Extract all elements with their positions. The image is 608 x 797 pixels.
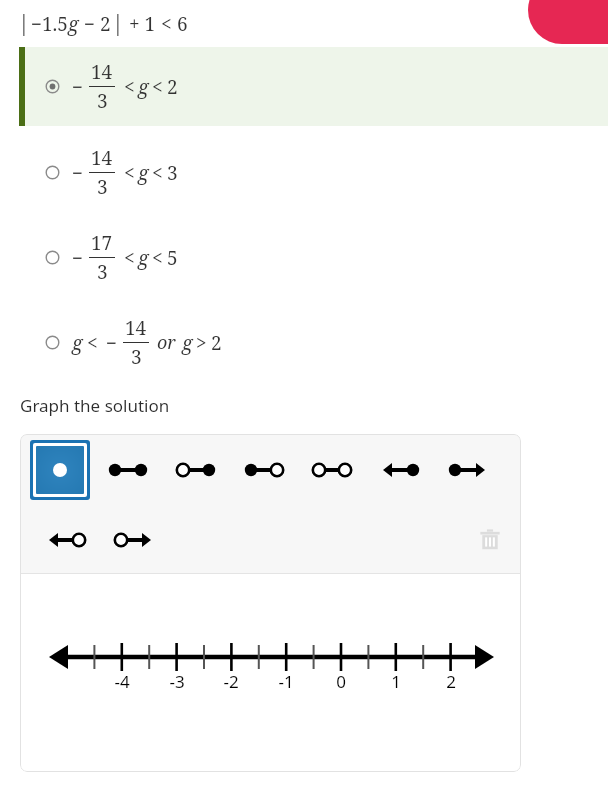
staticText: 14	[125, 315, 147, 341]
staticText: <	[152, 160, 163, 186]
staticText: Graph the solution	[20, 394, 170, 417]
button[interactable]: Segment tool 1	[104, 448, 152, 492]
staticText: >	[196, 330, 207, 356]
button[interactable]: Action	[528, 0, 608, 44]
button[interactable]: Delete	[473, 523, 507, 557]
staticText: −	[72, 245, 84, 271]
staticText: <	[161, 11, 172, 37]
staticText: 3	[97, 88, 108, 114]
staticText: 3	[167, 160, 178, 186]
staticText: 2	[211, 330, 222, 356]
button[interactable]: Point tool, selected	[29, 439, 91, 501]
staticText: + 1	[124, 11, 161, 37]
staticText: |	[18, 9, 30, 38]
staticText: g	[138, 245, 149, 271]
staticText: −	[106, 330, 118, 356]
staticText: 1	[391, 670, 401, 693]
staticText: g	[68, 11, 79, 37]
staticText: 17	[91, 230, 113, 256]
staticText: <	[152, 245, 163, 271]
staticText: <	[124, 74, 135, 100]
button[interactable]: −	[0, 47, 608, 126]
staticText: <	[87, 330, 98, 356]
button[interactable]: Segment tool 2	[172, 448, 220, 492]
staticText: 0	[336, 670, 346, 693]
staticText: g	[138, 160, 149, 186]
button[interactable]: g	[0, 302, 608, 382]
staticText: <	[152, 74, 163, 100]
staticText: <	[124, 160, 135, 186]
staticText: 2	[446, 670, 456, 693]
staticText: -4	[114, 670, 130, 693]
staticText: g	[72, 330, 83, 356]
button[interactable]: Segment tool 6	[444, 448, 492, 492]
staticText: or	[157, 330, 176, 355]
staticText: −	[72, 160, 84, 186]
button[interactable]: Segment tool 3	[240, 448, 288, 492]
staticText: |	[112, 9, 124, 38]
staticText: g	[182, 330, 193, 356]
staticText: <	[124, 245, 135, 271]
button[interactable]: Segment tool 5	[376, 448, 424, 492]
staticText: 3	[131, 344, 142, 370]
staticText: 6	[172, 11, 188, 37]
staticText: 14	[91, 145, 113, 171]
staticText: 5	[167, 245, 178, 271]
button[interactable]: Ray right open	[110, 518, 158, 562]
button[interactable]: −	[0, 132, 608, 212]
staticText: g	[138, 74, 149, 100]
button[interactable]: Segment tool 4	[308, 448, 356, 492]
staticText: −1.5	[31, 11, 68, 37]
button[interactable]: Ray left open	[42, 518, 90, 562]
button[interactable]: −	[0, 217, 608, 297]
staticText: -2	[223, 670, 239, 693]
staticText: 3	[97, 259, 108, 285]
staticText: -3	[169, 670, 185, 693]
staticText: −	[72, 74, 84, 100]
staticText: − 2	[79, 11, 111, 37]
staticText: 14	[91, 59, 113, 85]
staticText: -1	[278, 670, 294, 693]
staticText: 2	[167, 74, 178, 100]
staticText: 3	[97, 174, 108, 200]
